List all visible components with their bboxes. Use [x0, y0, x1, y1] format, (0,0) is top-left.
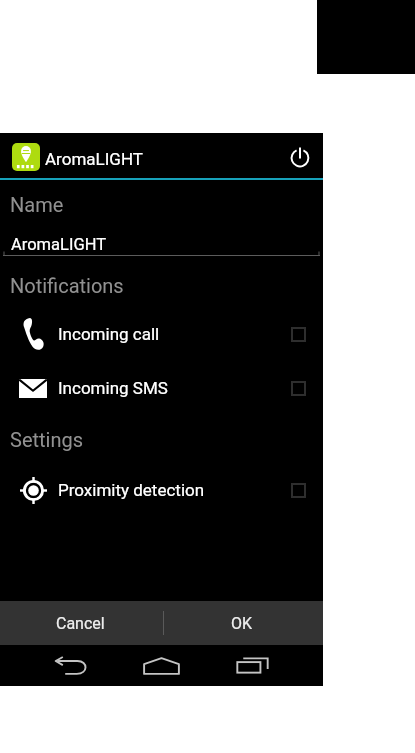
staticText: Proximity detection [58, 480, 205, 500]
button[interactable]: Cancel [0, 601, 161, 645]
staticText: Incoming call [58, 324, 160, 344]
staticText: AromaLIGHT [11, 235, 107, 254]
staticText: Cancel [56, 614, 105, 633]
staticText: OK [231, 614, 253, 633]
button[interactable]: Back [45, 645, 99, 686]
staticText: Notifications [10, 274, 124, 297]
button[interactable] [3, 246, 320, 258]
button[interactable]: Power [283, 140, 317, 174]
button[interactable]: Proximity detection [0, 463, 323, 517]
button[interactable]: OK [161, 601, 323, 645]
staticText: Settings [10, 428, 84, 451]
button[interactable]: Home [134, 645, 188, 686]
button[interactable]: App icon [12, 143, 40, 171]
button[interactable]: Incoming call [0, 307, 323, 361]
button[interactable]: Recents [225, 645, 279, 686]
button[interactable]: Incoming SMS [0, 361, 323, 415]
staticText: Incoming SMS [58, 378, 168, 398]
staticText: AromaLIGHT [45, 149, 143, 169]
staticText: Name [10, 193, 64, 216]
